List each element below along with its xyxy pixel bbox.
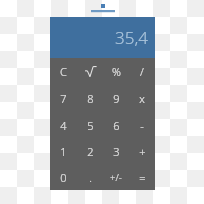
staticText: +/- xyxy=(110,171,122,184)
button[interactable]: + xyxy=(129,138,155,164)
staticText: % xyxy=(112,64,121,79)
button[interactable]: 0 xyxy=(50,164,77,190)
staticText: 6 xyxy=(113,118,120,133)
staticText: 3 xyxy=(113,144,120,159)
staticText: 9 xyxy=(113,91,120,106)
button[interactable]: C xyxy=(50,58,77,85)
button[interactable]: / xyxy=(129,58,155,85)
button[interactable]: 3 xyxy=(103,138,129,164)
staticText: 1 xyxy=(60,144,67,159)
button[interactable]: 6 xyxy=(103,112,129,138)
button[interactable]: 8 xyxy=(77,85,103,112)
staticText: 7 xyxy=(60,91,67,106)
button[interactable]: 1 xyxy=(50,138,77,164)
button[interactable]: . xyxy=(77,164,103,190)
button[interactable]: 7 xyxy=(50,85,77,112)
button[interactable]: Handle xyxy=(91,3,115,13)
button[interactable]: 4 xyxy=(50,112,77,138)
button[interactable]: % xyxy=(103,58,129,85)
staticText: . xyxy=(89,170,92,185)
staticText: 5 xyxy=(87,118,94,133)
staticText: + xyxy=(139,144,146,159)
button[interactable] xyxy=(77,58,103,85)
staticText: 35,4 xyxy=(115,26,148,49)
staticText: / xyxy=(140,64,144,79)
staticText: 2 xyxy=(87,144,94,159)
staticText: 4 xyxy=(60,118,67,133)
button[interactable]: = xyxy=(129,164,155,190)
staticText: 8 xyxy=(87,91,94,106)
staticText: - xyxy=(140,118,144,133)
button[interactable]: x xyxy=(129,85,155,112)
staticText: C xyxy=(60,64,67,79)
staticText: 0 xyxy=(60,170,67,185)
button[interactable]: 35,4 xyxy=(50,17,155,58)
button[interactable]: 5 xyxy=(77,112,103,138)
staticText: = xyxy=(139,170,146,185)
staticText: x xyxy=(139,91,145,106)
button[interactable]: 2 xyxy=(77,138,103,164)
button[interactable]: - xyxy=(129,112,155,138)
button[interactable]: 9 xyxy=(103,85,129,112)
button[interactable]: +/- xyxy=(103,164,129,190)
